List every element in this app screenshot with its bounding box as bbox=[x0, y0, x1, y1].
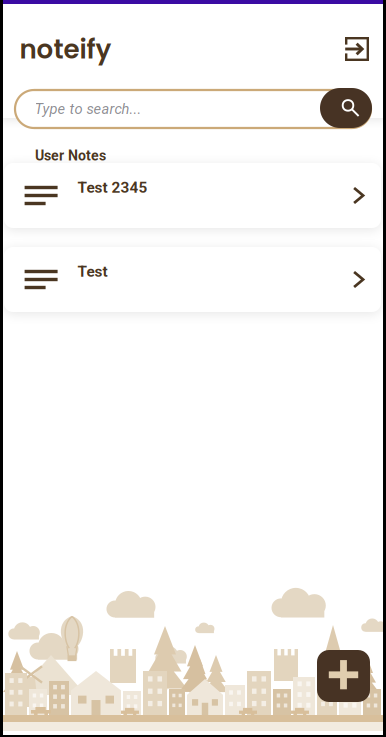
button[interactable]: Add note bbox=[317, 650, 370, 702]
staticText: Test 2345 bbox=[77, 178, 147, 196]
staticText: noteify bbox=[19, 31, 111, 68]
staticText: User Notes bbox=[35, 147, 106, 164]
button[interactable]: Test 2345 bbox=[4, 163, 381, 228]
button[interactable]: Test bbox=[4, 247, 381, 312]
button[interactable]: Search bbox=[320, 88, 372, 128]
staticText: Type to search... bbox=[35, 100, 142, 118]
staticText: Test bbox=[77, 262, 107, 280]
button[interactable]: Sign out bbox=[345, 37, 369, 61]
